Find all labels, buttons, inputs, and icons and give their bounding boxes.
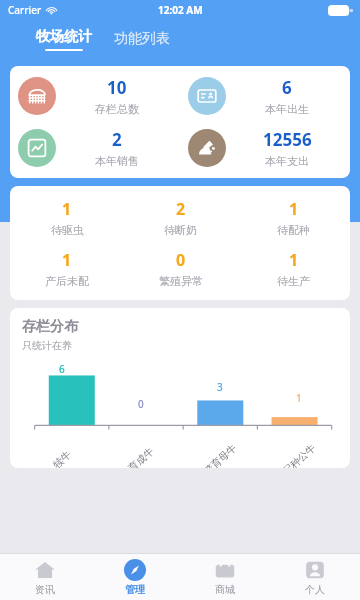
staticText: 待配种 <box>277 223 310 237</box>
staticText: 2 <box>176 198 186 220</box>
staticText: 本年出生 <box>265 102 309 116</box>
staticText: 繁育母牛 <box>201 441 239 468</box>
staticText: 犊牛 <box>50 448 74 468</box>
staticText: 3 <box>217 380 223 394</box>
staticText: 商城 <box>215 583 235 596</box>
staticText: 2 <box>112 128 122 151</box>
button[interactable]: 6 <box>180 76 350 116</box>
staticText: 待生产 <box>277 274 310 288</box>
button[interactable]: 商城 <box>180 554 270 600</box>
staticText: 个人 <box>305 583 325 596</box>
staticText: 待驱虫 <box>51 223 84 237</box>
staticText: 1 <box>62 249 72 271</box>
staticText: 0 <box>176 249 186 271</box>
button[interactable]: 2 <box>124 196 237 239</box>
staticText: 本年销售 <box>95 154 139 168</box>
staticText: 1 <box>289 198 299 220</box>
staticText: 6 <box>282 76 292 99</box>
button[interactable]: 2 <box>10 128 180 168</box>
staticText: 配种公牛 <box>280 441 318 468</box>
button[interactable]: 1 <box>237 247 350 290</box>
button[interactable]: 1 <box>237 196 350 239</box>
button[interactable]: 1 <box>10 247 124 290</box>
staticText: 6 <box>59 362 65 376</box>
staticText: 0 <box>138 397 144 411</box>
button[interactable]: 0 <box>124 247 237 290</box>
staticText: 存栏分布 <box>22 318 78 336</box>
staticText: 12:02 AM <box>158 3 203 17</box>
staticText: 育成牛 <box>125 445 156 468</box>
staticText: 功能列表 <box>114 30 170 48</box>
staticText: 产后未配 <box>45 274 89 288</box>
staticText: 只统计在养 <box>22 339 72 352</box>
staticText: 管理 <box>125 583 145 596</box>
button[interactable]: 1 <box>10 196 124 239</box>
button[interactable]: 功能列表 <box>110 28 174 50</box>
staticText: 1 <box>296 391 302 405</box>
button[interactable]: 资讯 <box>0 554 90 600</box>
staticText: Carrier <box>8 3 42 17</box>
staticText: 1 <box>289 249 299 271</box>
button[interactable]: 牧场统计 <box>32 28 96 51</box>
button[interactable]: 管理 <box>90 554 180 600</box>
staticText: 繁殖异常 <box>159 274 203 288</box>
button[interactable]: 10 <box>10 76 180 116</box>
staticText: 待断奶 <box>164 223 197 237</box>
button[interactable]: 12556 <box>180 128 350 168</box>
staticText: 1 <box>62 198 72 220</box>
staticText: 12556 <box>263 128 312 151</box>
button[interactable]: 个人 <box>270 554 360 600</box>
staticText: 10 <box>107 76 127 99</box>
staticText: 本年支出 <box>265 154 309 168</box>
staticText: 牧场统计 <box>36 28 92 46</box>
staticText: 存栏总数 <box>95 102 139 116</box>
staticText: 资讯 <box>35 583 55 596</box>
